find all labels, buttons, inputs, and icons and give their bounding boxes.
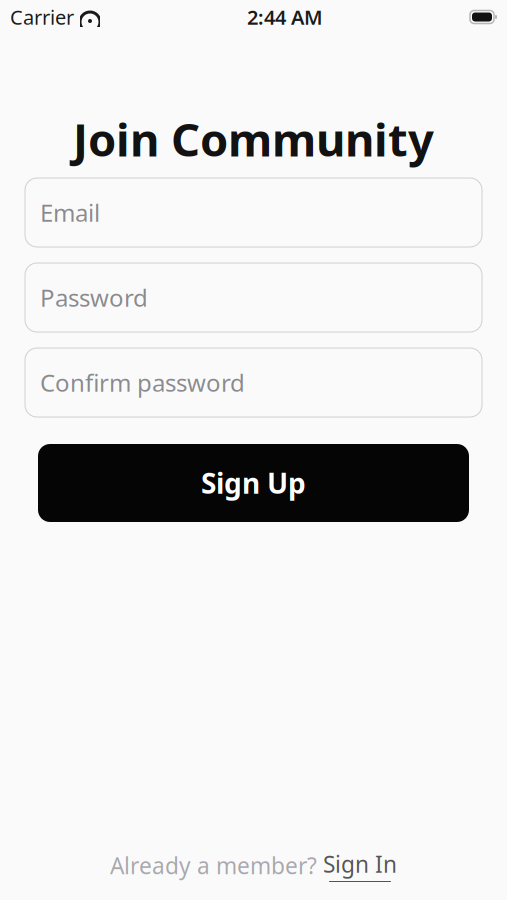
staticText: Join Community [73,109,434,169]
staticText: Already a member? [110,850,317,880]
staticText: Sign Up [201,464,306,502]
button[interactable]: Password [25,263,482,332]
staticText: Sign In [323,849,397,879]
staticText: Confirm password [40,367,245,398]
staticText: Password [40,282,148,313]
button[interactable]: Email [25,178,482,247]
button[interactable]: Already a member? [110,849,397,882]
staticText: Email [40,197,100,228]
staticText: 2:44 AM [247,4,323,30]
button[interactable]: Sign Up [38,444,469,522]
staticText: Carrier [10,4,74,30]
button[interactable]: Confirm password [25,348,482,417]
